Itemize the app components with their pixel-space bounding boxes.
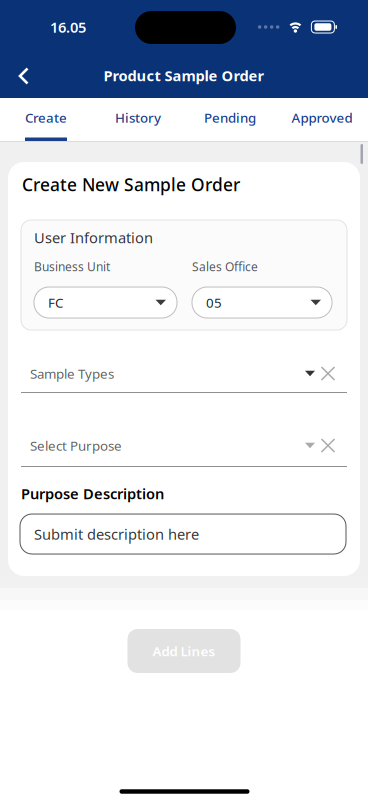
staticText: Create: [25, 109, 67, 126]
staticText: Sample Types: [30, 365, 114, 382]
button[interactable]: History: [92, 98, 184, 141]
staticText: FC: [48, 294, 63, 311]
staticText: Approved: [291, 109, 352, 126]
button[interactable]: Sample Types: [30, 366, 315, 381]
button[interactable]: Clear: [321, 366, 335, 380]
button[interactable]: Approved: [276, 98, 368, 141]
button[interactable]: 05: [192, 287, 332, 318]
button[interactable]: Add Lines: [127, 629, 240, 673]
button[interactable]: Back: [0, 67, 30, 84]
staticText: Select Purpose: [30, 437, 122, 454]
staticText: History: [115, 109, 161, 126]
staticText: Submit description here: [34, 524, 199, 544]
staticText: Purpose Description: [21, 484, 164, 503]
staticText: Business Unit: [34, 258, 110, 274]
button[interactable]: FC: [34, 287, 177, 318]
staticText: Add Lines: [152, 642, 215, 660]
staticText: 05: [206, 294, 222, 311]
button[interactable]: Clear: [321, 438, 335, 452]
staticText: 16.05: [50, 17, 86, 37]
staticText: Pending: [204, 109, 256, 126]
staticText: Create New Sample Order: [22, 173, 240, 196]
staticText: Product Sample Order: [103, 66, 264, 85]
button[interactable]: Pending: [184, 98, 276, 141]
staticText: Sales Office: [192, 258, 258, 274]
button[interactable]: Select Purpose: [30, 438, 315, 453]
button[interactable]: Create: [0, 98, 92, 141]
staticText: User Information: [34, 228, 153, 247]
button[interactable]: Submit description here: [20, 514, 346, 554]
